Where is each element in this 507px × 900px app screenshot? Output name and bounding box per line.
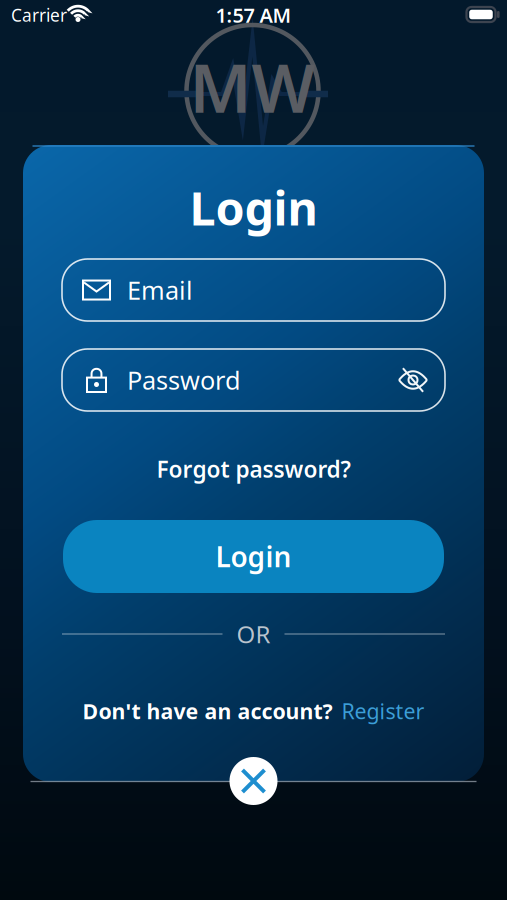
button[interactable]: Email	[62, 259, 445, 321]
button[interactable]: Show password	[399, 370, 427, 389]
staticText: OR	[236, 618, 270, 650]
staticText: Login	[215, 538, 291, 575]
staticText: Register	[341, 697, 424, 725]
staticText: Login	[189, 176, 317, 238]
button[interactable]: Register	[341, 697, 424, 725]
staticText: Email	[127, 273, 193, 307]
button[interactable]: Password	[62, 349, 445, 411]
staticText: Carrier	[11, 3, 67, 26]
button[interactable]: Login	[63, 520, 444, 593]
staticText: 1:57 AM	[215, 2, 291, 28]
staticText: MW	[189, 43, 315, 131]
button[interactable]: Forgot password?	[156, 454, 350, 484]
button[interactable]: Close	[229, 757, 277, 805]
staticText: Forgot password?	[156, 454, 350, 484]
staticText: Password	[127, 363, 241, 397]
staticText: Don't have an account?	[82, 697, 332, 725]
